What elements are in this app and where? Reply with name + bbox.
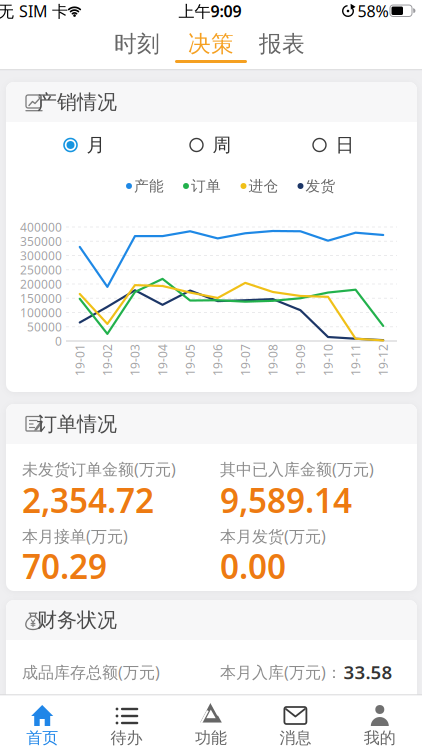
staticText: 首页	[26, 728, 58, 748]
staticText: 58%	[357, 0, 388, 22]
staticText: 19-04	[146, 352, 178, 368]
staticText: 功能	[195, 728, 227, 748]
staticText: 19-07	[229, 352, 261, 368]
staticText: 19-02	[91, 352, 123, 368]
staticText: 产能	[134, 177, 164, 195]
staticText: 上午9:09	[178, 0, 241, 22]
staticText: 报表	[259, 30, 305, 58]
staticText: 订单	[191, 177, 221, 195]
staticText: 发货	[305, 177, 335, 195]
staticText: 周	[212, 133, 231, 156]
staticText: 时刻	[114, 30, 160, 58]
staticText: 日	[335, 133, 354, 156]
button[interactable]: 月	[62, 133, 105, 156]
button[interactable]: 日	[311, 133, 354, 156]
staticText: 19-05	[174, 352, 206, 368]
staticText: 其中已入库金额(万元)	[220, 458, 374, 480]
staticText: 50000	[27, 319, 62, 335]
staticText: 未发货订单金额(万元)	[22, 458, 176, 480]
button[interactable]: 消息	[253, 696, 337, 750]
staticText: 月	[86, 133, 105, 156]
staticText: 70.29	[22, 544, 107, 588]
staticText: 19-11	[340, 352, 372, 368]
staticText: 33.58	[343, 660, 392, 684]
staticText: 19-12	[367, 352, 399, 368]
button[interactable]: 待办	[85, 696, 169, 750]
staticText: 无 SIM 卡	[0, 0, 68, 22]
staticText: 19-09	[284, 352, 316, 368]
staticText: 19-10	[312, 352, 344, 368]
button[interactable]: 报表	[259, 30, 305, 58]
button[interactable]: 功能	[169, 696, 253, 750]
staticText: 待办	[111, 728, 143, 748]
staticText: 我的	[364, 728, 396, 748]
staticText: 2,354.72	[22, 478, 154, 522]
staticText: 决策	[188, 30, 234, 58]
button[interactable]: 决策	[188, 30, 234, 58]
staticText: 400000	[20, 219, 62, 235]
staticText: 订单情况	[37, 412, 117, 436]
staticText: 本月接单(万元)	[22, 525, 128, 547]
staticText: 本月入库(万元)：	[220, 661, 342, 683]
button[interactable]: 周	[188, 133, 231, 156]
staticText: 200000	[20, 276, 62, 292]
staticText: 150000	[20, 290, 62, 306]
staticText: 0	[55, 333, 62, 349]
staticText: 19-06	[202, 352, 234, 368]
staticText: 100000	[20, 304, 62, 320]
staticText: 进仓	[248, 177, 278, 195]
staticText: 成品库存总额(万元)	[22, 661, 160, 683]
staticText: 0.00	[220, 544, 286, 588]
staticText: 250000	[20, 262, 62, 278]
button[interactable]: 我的	[338, 696, 422, 750]
staticText: 9,589.14	[220, 478, 352, 522]
staticText: 19-08	[257, 352, 289, 368]
staticText: 本月发货(万元)	[220, 525, 326, 547]
staticText: 19-01	[64, 352, 96, 368]
staticText: 财务状况	[37, 608, 117, 632]
staticText: 19-03	[119, 352, 151, 368]
staticText: 消息	[279, 728, 311, 748]
staticText: 300000	[20, 247, 62, 263]
button[interactable]: 时刻	[114, 30, 160, 58]
button[interactable]: 首页	[0, 696, 84, 750]
staticText: 产销情况	[37, 90, 117, 114]
staticText: 350000	[20, 233, 62, 249]
